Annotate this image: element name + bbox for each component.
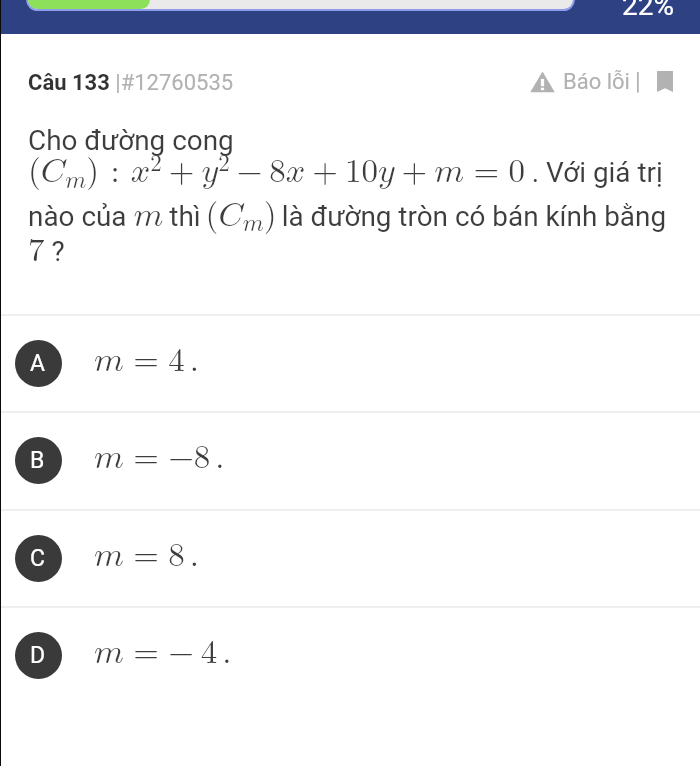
button[interactable]: A: [0, 316, 700, 411]
staticText: 𝑚 = −8 .: [94, 431, 225, 478]
staticText: 22%: [622, 0, 674, 22]
staticText: 𝑚 = 8 .: [94, 529, 199, 576]
staticText: 𝑚 = − 4 .: [94, 626, 232, 673]
staticText: Cho đường cong: [28, 124, 234, 157]
staticText: B: [30, 447, 45, 474]
staticText: A: [30, 350, 46, 377]
staticText: D: [30, 642, 46, 669]
staticText: 7 ?: [28, 224, 65, 271]
button[interactable]: D: [0, 608, 700, 703]
staticText: C: [30, 545, 45, 572]
staticText: 𝑚 = 4 .: [94, 334, 199, 381]
button[interactable]: C: [0, 511, 700, 606]
staticText: nào của 𝑚 thì (𝐶𝑚) là đường tròn có bán …: [28, 189, 667, 236]
staticText: (𝐶𝑚) : 𝑥2 + 𝑦2 − 8𝑥 + 10𝑦 + 𝑚 = 0 . Với …: [28, 144, 663, 192]
button[interactable]: Bookmark: [657, 71, 673, 92]
staticText: |: [635, 68, 641, 95]
button[interactable]: Báo lỗi: [530, 66, 630, 98]
staticText: Câu 133 |#12760535: [28, 70, 234, 96]
staticText: Báo lỗi: [563, 69, 630, 95]
button[interactable]: B: [0, 413, 700, 508]
